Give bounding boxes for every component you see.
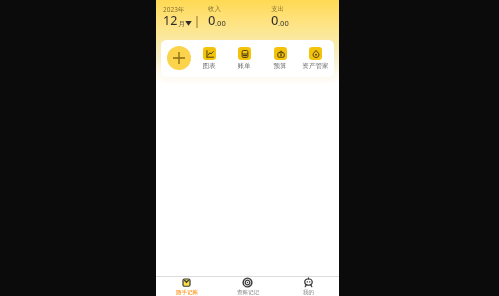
staticText: 资产管家 (302, 62, 329, 70)
button[interactable]: 随手记账 (156, 277, 217, 296)
button[interactable]: 预算 (263, 47, 297, 70)
staticText: 12 (163, 12, 178, 29)
button[interactable]: 图表 (192, 47, 226, 70)
button[interactable]: 收入 (208, 5, 227, 31)
button[interactable]: 账单 (227, 47, 261, 70)
button[interactable]: 资产管家 (298, 47, 332, 70)
staticText: .00 (215, 18, 226, 28)
staticText: 0 (208, 11, 216, 29)
button[interactable]: 我的 (278, 277, 339, 296)
button[interactable]: Add record (167, 46, 191, 70)
staticText: 随手记账 (176, 289, 198, 296)
button[interactable]: Select month (163, 5, 192, 31)
staticText: 查账记记 (237, 289, 259, 296)
button[interactable]: 查账记记 (217, 277, 278, 296)
staticText: 预算 (273, 62, 287, 70)
staticText: 月 (178, 19, 185, 28)
staticText: 0 (271, 11, 279, 29)
staticText: 支出 (271, 5, 284, 13)
button[interactable]: 支出 (271, 5, 290, 31)
staticText: 账单 (237, 62, 251, 70)
staticText: 我的 (303, 289, 314, 296)
staticText: 2023年 (163, 5, 185, 14)
staticText: 收入 (208, 5, 221, 13)
staticText: .00 (278, 18, 289, 28)
staticText: 图表 (202, 62, 216, 70)
